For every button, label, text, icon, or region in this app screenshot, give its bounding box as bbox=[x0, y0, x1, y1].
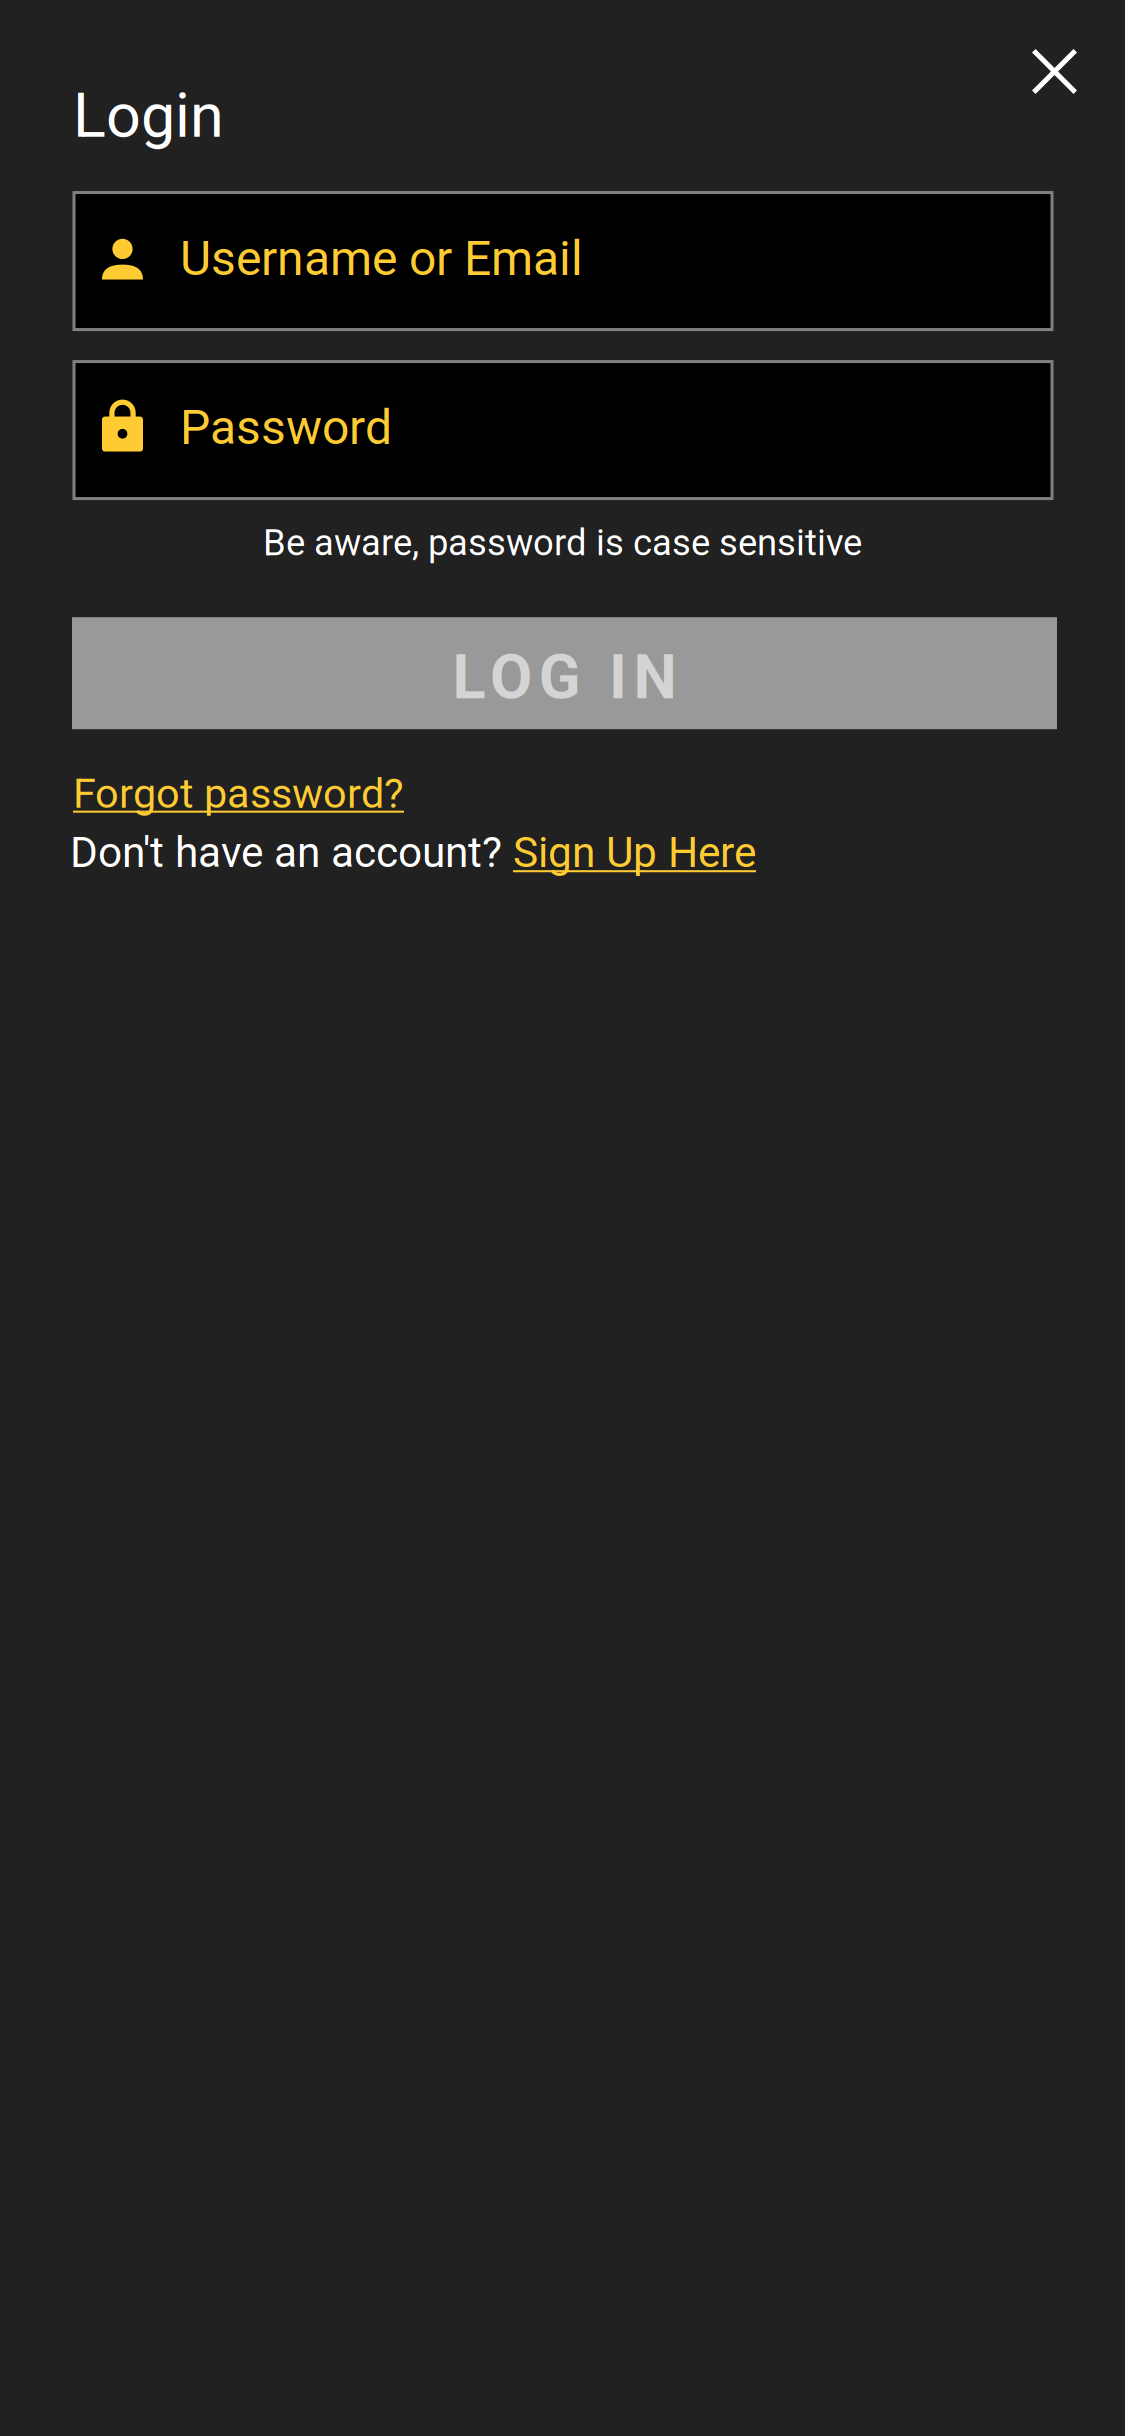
button[interactable]: Close bbox=[1032, 0, 1125, 94]
staticText: Sign Up Here bbox=[513, 828, 756, 877]
staticText: Password bbox=[180, 400, 392, 456]
staticText: Username or Email bbox=[180, 231, 583, 287]
staticText: Login bbox=[73, 80, 224, 152]
staticText: Forgot password? bbox=[73, 769, 404, 818]
staticText: LOG IN bbox=[452, 641, 676, 713]
button[interactable]: Password bbox=[74, 362, 1052, 499]
staticText: Be aware, password is case sensitive bbox=[263, 522, 862, 564]
button[interactable]: Sign Up Here bbox=[513, 828, 756, 877]
button[interactable]: LOG IN bbox=[72, 617, 1057, 729]
button[interactable]: Username or Email bbox=[74, 193, 1052, 330]
button[interactable]: Forgot password? bbox=[73, 769, 404, 818]
staticText: Don't have an account? bbox=[70, 828, 513, 877]
